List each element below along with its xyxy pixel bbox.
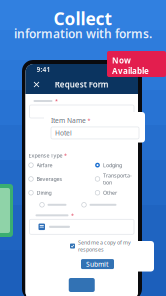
staticText: Send me a copy of my responses — [78, 239, 131, 253]
staticText: 9:41 — [36, 65, 50, 74]
staticText: * — [55, 97, 58, 105]
button[interactable]: Submit — [69, 278, 95, 292]
staticText: Item Name — [51, 116, 86, 125]
staticText: Collect — [53, 7, 112, 30]
staticText: Offline — [112, 76, 139, 87]
staticText: Submit — [86, 260, 109, 269]
staticText: Expense Type — [28, 152, 62, 159]
staticText: * — [71, 212, 74, 219]
button[interactable]: Submit — [81, 259, 114, 269]
staticText: Lodging — [103, 162, 122, 169]
staticText: Request Form — [55, 79, 109, 90]
staticText: information with forms. — [14, 25, 152, 41]
staticText: Beverages — [36, 175, 62, 182]
staticText: Now Available — [112, 55, 149, 76]
staticText: Hotel — [55, 128, 72, 137]
button[interactable]: Close — [32, 80, 40, 88]
staticText: Transportation — [103, 172, 132, 186]
staticText: * — [64, 152, 67, 159]
staticText: Airfare — [36, 162, 52, 169]
staticText: Dining — [36, 189, 51, 196]
staticText: Other — [103, 189, 117, 196]
staticText: * — [87, 117, 90, 124]
